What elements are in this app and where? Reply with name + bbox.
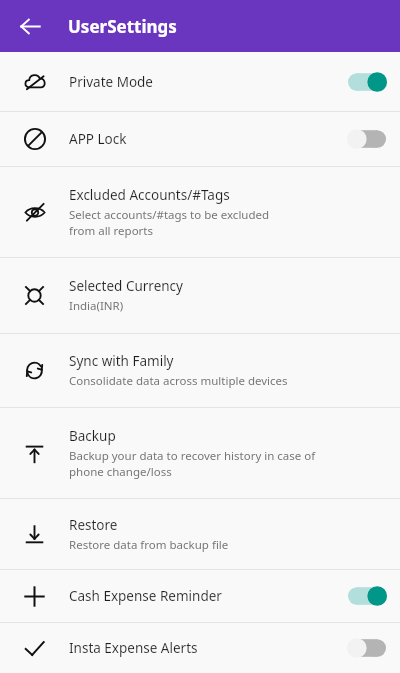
button[interactable]: Backup	[0, 408, 400, 498]
button[interactable]: Cash Expense Reminder	[0, 570, 400, 622]
staticText: Select accounts/#tags to be excluded fro…	[69, 207, 270, 238]
staticText: India(INR)	[69, 298, 124, 314]
button[interactable]: Private Mode on	[334, 52, 400, 111]
button[interactable]: Restore	[0, 499, 400, 569]
button[interactable]: Insta Expense Alerts	[0, 623, 400, 673]
staticText: Backup your data to recover history in c…	[69, 448, 316, 479]
staticText: Backup	[69, 427, 116, 445]
button[interactable]: APP Lock off	[334, 112, 400, 166]
staticText: Insta Expense Alerts	[69, 639, 198, 657]
button[interactable]: Selected Currency	[0, 258, 400, 333]
staticText: UserSettings	[68, 15, 177, 38]
staticText: Private Mode	[69, 73, 153, 91]
button[interactable]: Insta Expense Alerts off	[334, 623, 400, 673]
staticText: Consolidate data across multiple devices	[69, 373, 288, 389]
button[interactable]: APP Lock	[0, 112, 400, 166]
button[interactable]: Sync with Family	[0, 334, 400, 407]
staticText: Selected Currency	[69, 277, 183, 295]
staticText: APP Lock	[69, 130, 127, 148]
button[interactable]: Back	[12, 8, 48, 44]
button[interactable]: Cash Expense Reminder on	[334, 570, 400, 622]
staticText: Restore	[69, 516, 118, 534]
button[interactable]: Private Mode	[0, 52, 400, 111]
staticText: Sync with Family	[69, 352, 174, 370]
staticText: Cash Expense Reminder	[69, 587, 222, 605]
staticText: Restore data from backup file	[69, 537, 229, 553]
staticText: Excluded Accounts/#Tags	[69, 186, 230, 204]
button[interactable]: Excluded Accounts/#Tags	[0, 167, 400, 257]
